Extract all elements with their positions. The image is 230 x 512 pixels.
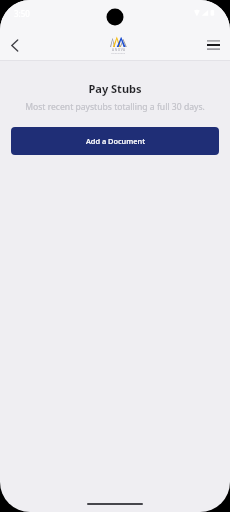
staticText: ANOVA [112, 48, 126, 52]
staticText: WORKFORCE [111, 52, 126, 55]
button[interactable]: Menu [198, 30, 228, 60]
staticText: Add a Document [86, 136, 145, 146]
staticText: Pay Stubs [0, 81, 230, 96]
staticText: Most recent paystubs totalling a full 30… [0, 101, 230, 113]
staticText: 3:50 [14, 8, 30, 19]
button[interactable]: Back [0, 30, 30, 60]
button[interactable]: Add a Document [11, 127, 219, 155]
